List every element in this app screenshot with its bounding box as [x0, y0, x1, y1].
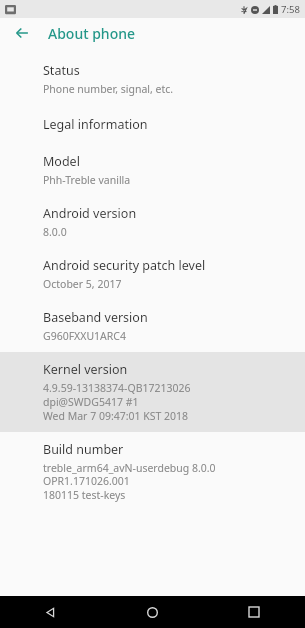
button[interactable]: Build number — [0, 432, 305, 511]
staticText: 7:58 — [281, 3, 300, 16]
staticText: 4.9.59-13138374-QB17213026 — [43, 381, 191, 395]
staticText: Legal information — [43, 116, 148, 133]
staticText: Android version — [43, 205, 137, 222]
staticText: treble_arm64_avN-userdebug 8.0.0 OPR1.17… — [43, 461, 289, 488]
staticText: Baseband version — [43, 309, 148, 326]
staticText: October 5, 2017 — [43, 277, 122, 291]
staticText: Phone number, signal, etc. — [43, 82, 174, 96]
staticText: Kernel version — [43, 361, 128, 378]
button[interactable]: Model — [0, 144, 305, 196]
staticText: Phh-Treble vanilla — [43, 173, 131, 187]
button[interactable]: Home — [101, 596, 203, 628]
staticText: 180115 test-keys — [43, 488, 126, 502]
button[interactable]: Baseband version — [0, 300, 305, 352]
button[interactable]: Kernel version — [0, 352, 305, 432]
staticText: About phone — [48, 24, 136, 43]
button[interactable]: Android version — [0, 196, 305, 248]
staticText: 8.0.0 — [43, 225, 67, 239]
staticText: Build number — [43, 441, 124, 458]
button[interactable]: Back — [8, 19, 36, 47]
button[interactable]: Legal information — [0, 105, 305, 144]
button[interactable]: Recent apps — [203, 596, 305, 628]
staticText: dpi@SWDG5417 #1 — [43, 395, 139, 409]
staticText: Wed Mar 7 09:47:01 KST 2018 — [43, 409, 189, 423]
staticText: Model — [43, 153, 80, 170]
button[interactable]: Android security patch level — [0, 248, 305, 300]
button[interactable]: Status — [0, 53, 305, 105]
staticText: Status — [43, 62, 80, 79]
staticText: G960FXXU1ARC4 — [43, 329, 126, 343]
button[interactable]: Back — [0, 596, 101, 628]
staticText: Android security patch level — [43, 257, 206, 274]
